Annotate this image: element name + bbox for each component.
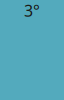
staticText: 3° — [24, 0, 40, 21]
